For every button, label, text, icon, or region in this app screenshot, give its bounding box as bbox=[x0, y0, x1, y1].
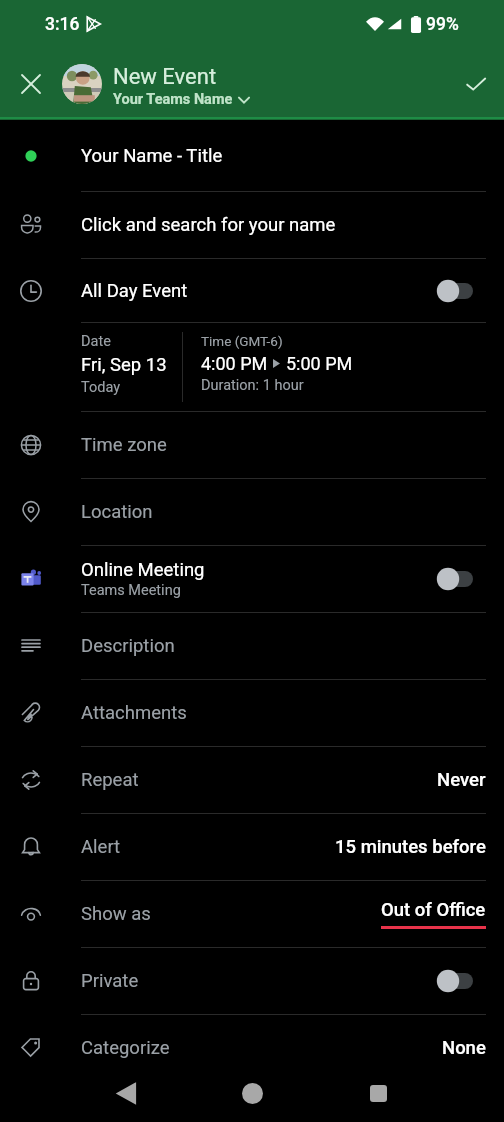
button[interactable]: All Day Event toggle bbox=[434, 275, 486, 307]
staticText: Attachments bbox=[81, 702, 187, 724]
staticText: All Day Event bbox=[81, 280, 188, 302]
staticText: New Event bbox=[113, 64, 217, 90]
staticText: Online Meeting bbox=[81, 559, 205, 581]
staticText: Today bbox=[81, 379, 121, 396]
button[interactable]: Alert bbox=[0, 814, 504, 880]
staticText: 5:00 PM bbox=[286, 353, 353, 374]
other: Location bbox=[19, 500, 43, 524]
button[interactable]: Account bbox=[62, 64, 102, 104]
button[interactable]: Time zone bbox=[0, 412, 504, 478]
other: Online meeting bbox=[19, 567, 43, 591]
other: Attachments bbox=[19, 701, 43, 725]
other: Description bbox=[19, 634, 43, 658]
button[interactable]: Date bbox=[81, 323, 182, 396]
staticText: 4:00 PM bbox=[201, 353, 268, 374]
staticText: Never bbox=[437, 769, 486, 791]
button[interactable]: Categorize bbox=[0, 1015, 504, 1081]
staticText: Fri, Sep 13 bbox=[81, 354, 167, 376]
button[interactable]: Home bbox=[189, 1065, 315, 1122]
staticText: Description bbox=[81, 635, 175, 657]
button[interactable]: Recents bbox=[315, 1065, 441, 1122]
other: Private bbox=[19, 969, 43, 993]
staticText: Show as bbox=[81, 903, 151, 925]
staticText: Your Name - Title bbox=[81, 145, 223, 167]
button[interactable]: Private bbox=[0, 948, 504, 1014]
button[interactable]: Time bbox=[0, 259, 504, 322]
staticText: Repeat bbox=[81, 769, 139, 791]
staticText: Your Teams Name bbox=[113, 91, 233, 108]
staticText: 3:16 bbox=[45, 14, 80, 35]
button[interactable]: People bbox=[0, 192, 504, 258]
staticText: Out of Office bbox=[381, 899, 486, 921]
button[interactable]: Show as bbox=[0, 881, 504, 947]
other: Categorize bbox=[19, 1036, 43, 1060]
button[interactable]: Description bbox=[0, 613, 504, 679]
button[interactable]: Save bbox=[448, 53, 504, 115]
other: Time bbox=[19, 279, 43, 303]
staticText: Location bbox=[81, 501, 153, 523]
button[interactable]: Time (GMT-6) bbox=[201, 333, 353, 394]
other: Repeat bbox=[19, 768, 43, 792]
other: Alert bbox=[19, 835, 43, 859]
staticText: Time (GMT-6) bbox=[201, 333, 283, 349]
staticText: Teams Meeting bbox=[81, 582, 181, 599]
other: Calendar colour bbox=[19, 144, 43, 168]
button[interactable]: Back bbox=[63, 1065, 189, 1122]
staticText: Duration: 1 hour bbox=[201, 377, 304, 394]
staticText: Private bbox=[81, 970, 139, 992]
button[interactable]: Location bbox=[0, 479, 504, 545]
button[interactable]: Private toggle bbox=[434, 965, 486, 997]
button[interactable]: Online meeting bbox=[0, 546, 504, 612]
other: Time zone bbox=[19, 433, 43, 457]
button[interactable]: Close bbox=[0, 53, 62, 115]
staticText: None bbox=[442, 1037, 486, 1059]
staticText: 99% bbox=[426, 14, 459, 35]
button[interactable]: Online Meeting toggle bbox=[434, 563, 486, 595]
staticText: Date bbox=[81, 333, 111, 350]
other: Show as bbox=[19, 902, 43, 926]
button[interactable]: Attachments bbox=[0, 680, 504, 746]
staticText: Categorize bbox=[81, 1037, 170, 1059]
button[interactable]: Repeat bbox=[0, 747, 504, 813]
button[interactable]: Calendar colour bbox=[0, 120, 504, 191]
staticText: 15 minutes before bbox=[335, 836, 486, 858]
staticText: Click and search for your name bbox=[81, 214, 336, 236]
staticText: Time zone bbox=[81, 434, 167, 456]
other: People bbox=[19, 213, 43, 237]
staticText: Alert bbox=[81, 836, 121, 858]
